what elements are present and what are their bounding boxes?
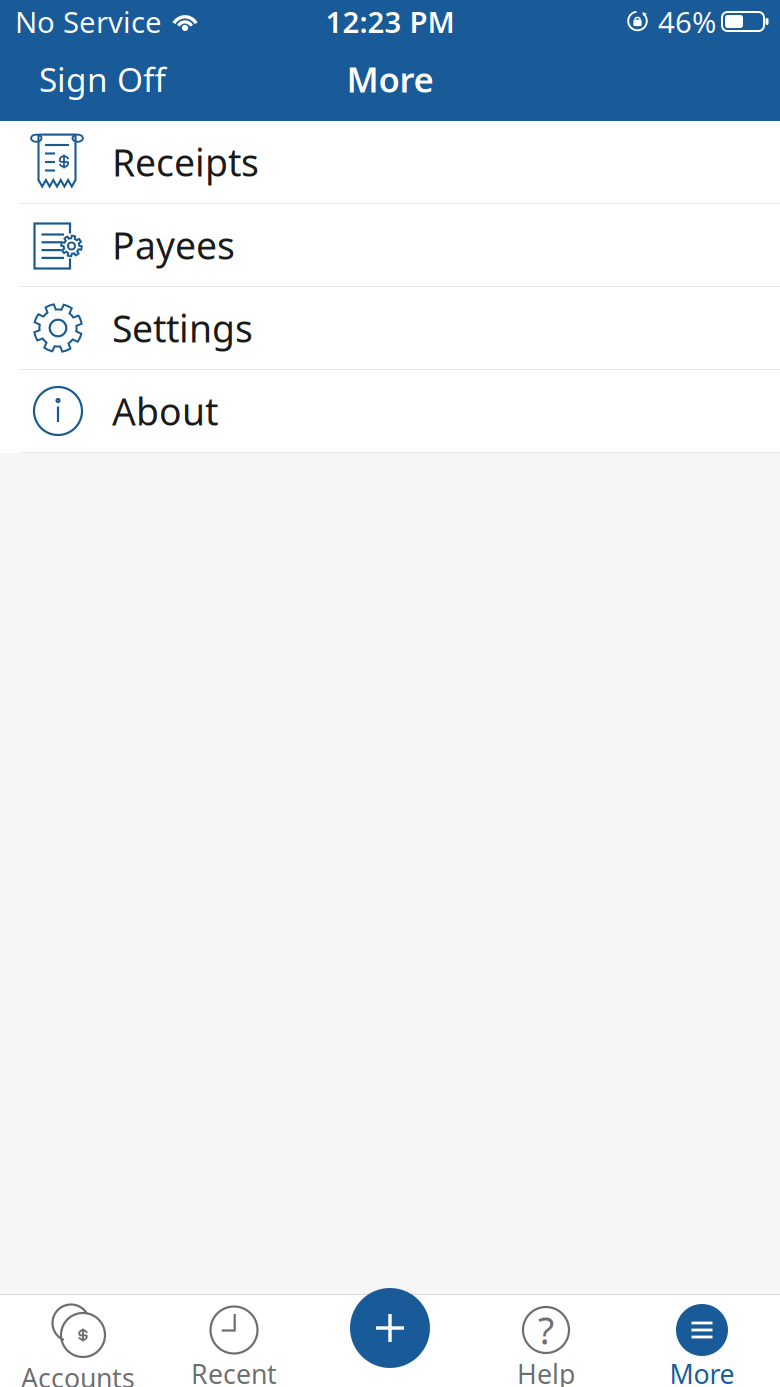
button[interactable]: Payees	[0, 204, 780, 287]
button[interactable]: Accounts	[0, 1295, 156, 1387]
button[interactable]: Recent	[156, 1295, 312, 1387]
staticText: More	[346, 56, 433, 102]
button[interactable]: New transaction	[350, 1288, 430, 1368]
button[interactable]: Settings	[0, 287, 780, 370]
staticText: 12:23 PM	[325, 2, 454, 41]
staticText: Help	[517, 1356, 575, 1387]
staticText: About	[112, 386, 218, 436]
staticText: Recent	[191, 1356, 277, 1387]
staticText: Accounts	[21, 1360, 135, 1387]
staticText: 46%	[658, 2, 716, 41]
staticText: Settings	[112, 303, 253, 353]
button[interactable]: ?	[468, 1295, 624, 1387]
staticText: More	[669, 1356, 734, 1387]
button[interactable]: More	[624, 1295, 780, 1387]
button[interactable]: About	[0, 370, 780, 453]
staticText: Sign Off	[39, 57, 166, 101]
button[interactable]: Receipts	[0, 121, 780, 204]
button[interactable]: Sign Off	[39, 60, 166, 104]
staticText: Payees	[112, 220, 235, 270]
staticText: ?	[538, 1305, 554, 1355]
staticText: No Service	[15, 2, 162, 41]
staticText: Receipts	[112, 137, 259, 187]
